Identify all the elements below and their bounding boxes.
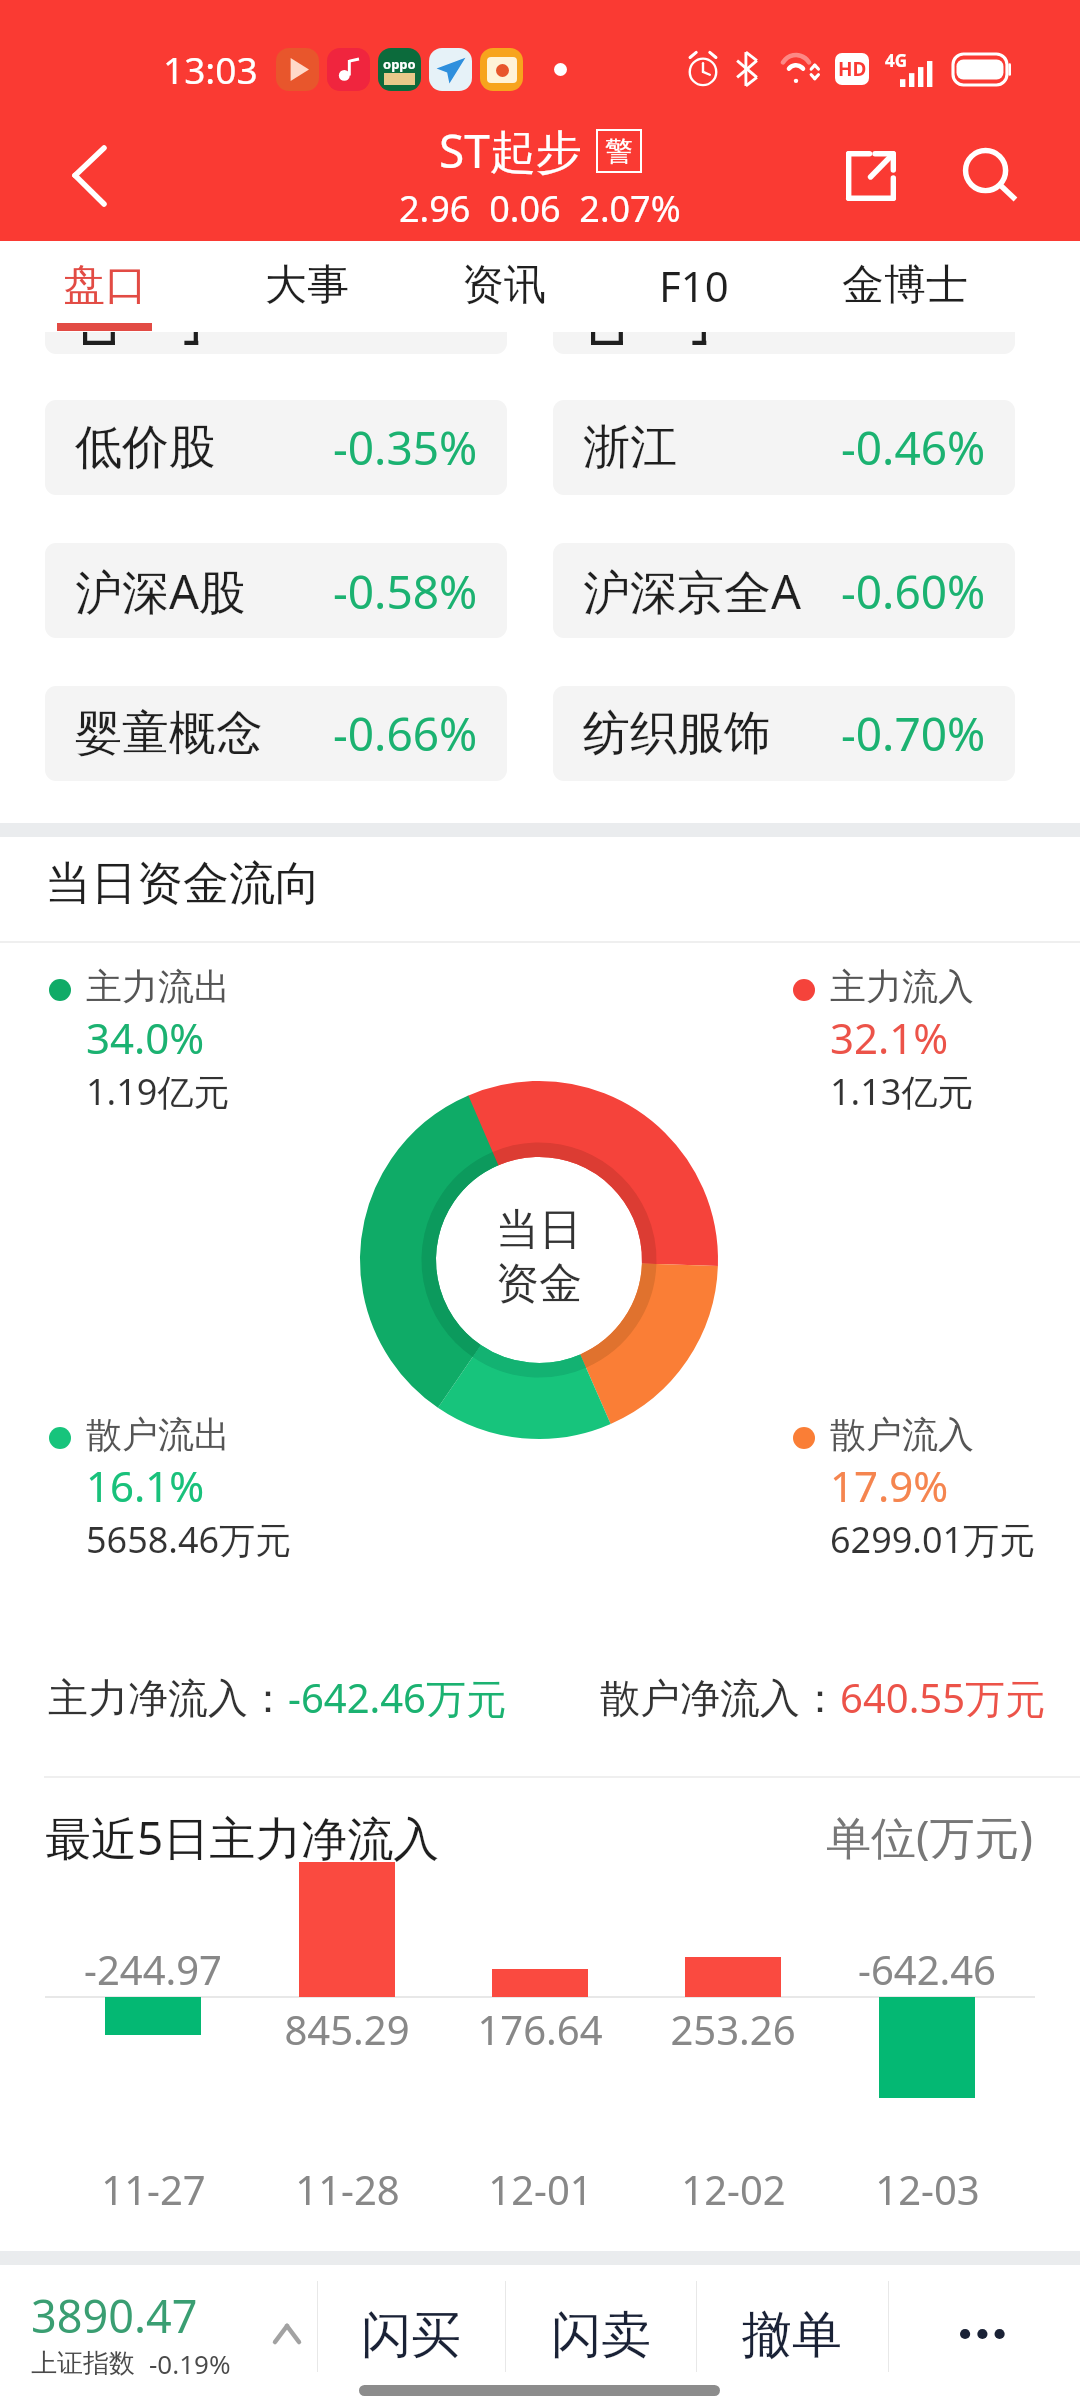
staticText: 闪买 [361, 2304, 461, 2367]
staticText: 640.55万元 [840, 1670, 1046, 1725]
staticText: 主力净流入： [48, 1673, 288, 1723]
staticText: F10 [659, 257, 729, 314]
button[interactable]: F10 [659, 241, 729, 332]
staticText: 盘口 [63, 259, 147, 312]
staticText: 845.29 [284, 2002, 410, 2056]
button[interactable]: 闪买 [317, 2281, 505, 2372]
staticText: -0.70% [841, 702, 986, 765]
staticText: 低价股 [75, 418, 216, 477]
button[interactable]: Expand [237, 2285, 337, 2365]
button[interactable]: More [888, 2265, 1080, 2400]
staticText: 6299.01万元 [830, 1515, 1036, 1564]
staticText: -0.19% [149, 2346, 231, 2381]
staticText: 11-27 [101, 2162, 206, 2216]
staticText: -0.58% [333, 560, 478, 623]
button[interactable]: 撤单 [696, 2281, 888, 2372]
staticText: 撤单 [742, 2304, 842, 2367]
staticText: 婴童概念 [75, 704, 263, 763]
staticText: 警 [605, 134, 633, 169]
button[interactable]: 大事 [265, 241, 349, 332]
staticText: 32.1% [830, 1009, 949, 1066]
staticText: 最近5日主力净流入 [45, 1806, 440, 1869]
staticText: 主力流入 [830, 964, 974, 1009]
button[interactable]: 沪深京全A [553, 543, 1015, 638]
staticText: 4G [885, 49, 908, 72]
staticText: 上证指数 [31, 2347, 135, 2380]
staticText: 沪深京全A [583, 559, 802, 623]
staticText: 当日资金流向 [45, 855, 321, 913]
staticText: 3890.47 [31, 2285, 198, 2346]
staticText: 沪深A股 [75, 559, 247, 623]
staticText: 16.1% [86, 1457, 205, 1514]
button[interactable]: 低价股 [45, 400, 507, 495]
staticText: 253.26 [670, 2002, 796, 2056]
staticText: 闪卖 [551, 2304, 651, 2367]
staticText: 当日 资金 [496, 1203, 582, 1310]
staticText: 散户流入 [830, 1412, 974, 1457]
staticText: 17.9% [830, 1457, 949, 1514]
staticText: -642.46万元 [288, 1670, 506, 1725]
button[interactable]: 浙江 [553, 400, 1015, 495]
button[interactable]: 资讯 [462, 241, 546, 332]
staticText: 散户流出 [86, 1412, 230, 1457]
staticText: 11-28 [295, 2162, 400, 2216]
staticText: 13:03 [163, 44, 258, 94]
staticText: 34.0% [86, 1009, 205, 1066]
staticText: 176.64 [477, 2002, 603, 2056]
button[interactable]: 纺织服饰 [553, 686, 1015, 781]
button[interactable]: Back [45, 118, 135, 208]
staticText: 5658.46万元 [86, 1515, 292, 1564]
staticText: -244.97 [84, 1942, 222, 1996]
staticText: -0.35% [333, 416, 478, 479]
staticText: 单位(万元) [826, 1806, 1034, 1867]
staticText: -0.66% [333, 702, 478, 765]
staticText: HD [838, 56, 867, 82]
staticText: -0.46% [841, 416, 986, 479]
staticText: 浙江 [583, 418, 677, 477]
button[interactable]: Search [930, 116, 1050, 236]
staticText: oppo [383, 55, 416, 73]
staticText: 12-03 [875, 2162, 980, 2216]
button[interactable]: 闪卖 [505, 2281, 696, 2372]
button[interactable]: Share [811, 116, 931, 236]
staticText: 12-02 [681, 2162, 786, 2216]
staticText: 1.13亿元 [830, 1067, 974, 1116]
staticText: -0.60% [841, 560, 986, 623]
staticText: 1.19亿元 [86, 1067, 230, 1116]
button[interactable] [45, 259, 507, 354]
staticText: 大事 [265, 259, 349, 312]
staticText: 主力流出 [86, 964, 230, 1009]
button[interactable] [553, 259, 1015, 354]
staticText: 散户净流入： [600, 1673, 840, 1723]
staticText: ST起步 [439, 119, 582, 182]
staticText: 纺织服饰 [583, 704, 771, 763]
button[interactable]: 金博士 [842, 241, 968, 332]
staticText: -642.46 [858, 1942, 996, 1996]
staticText: 资讯 [462, 259, 546, 312]
staticText: 12-01 [488, 2162, 593, 2216]
button[interactable]: 沪深A股 [45, 543, 507, 638]
staticText: 2.96 0.06 2.07% [399, 184, 681, 233]
button[interactable]: 婴童概念 [45, 686, 507, 781]
staticText: 金博士 [842, 259, 968, 312]
button[interactable]: 盘口 [57, 241, 152, 332]
